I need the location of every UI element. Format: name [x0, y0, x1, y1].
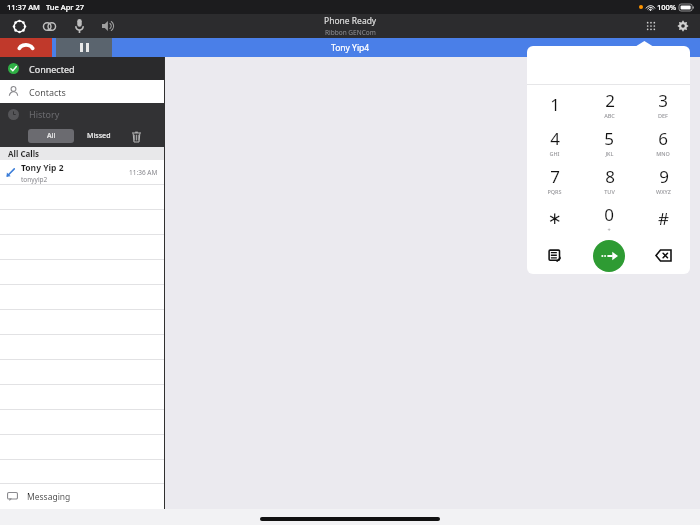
button[interactable]: Call: [582, 237, 636, 274]
staticText: +: [607, 226, 611, 233]
staticText: WXYZ: [656, 188, 671, 195]
staticText: Tue Apr 27: [46, 2, 85, 12]
button[interactable]: Delete history: [128, 128, 144, 144]
staticText: All Calls: [8, 148, 40, 159]
staticText: Tony Yip4: [331, 42, 370, 54]
button[interactable]: Settings: [672, 15, 694, 37]
button[interactable]: [527, 46, 690, 84]
staticText: Messaging: [27, 491, 71, 503]
button[interactable]: Tony Yip 2: [0, 160, 164, 185]
staticText: PQRS: [547, 188, 562, 195]
button[interactable]: ∗: [527, 199, 582, 237]
button[interactable]: 4: [527, 123, 582, 161]
button[interactable]: Speaker volume: [98, 15, 120, 37]
button[interactable]: Connected: [0, 57, 164, 80]
button[interactable]: Dial pad: [640, 15, 662, 37]
button[interactable]: App logo: [8, 15, 30, 37]
staticText: Contacts: [29, 86, 66, 98]
staticText: 11:37 AM: [7, 2, 40, 12]
button[interactable]: 0: [582, 199, 636, 237]
staticText: ABC: [604, 112, 615, 119]
staticText: JKL: [605, 150, 614, 157]
button[interactable]: Missed: [76, 129, 122, 143]
button[interactable]: 9: [636, 161, 690, 199]
button[interactable]: Voicemail: [38, 15, 60, 37]
button[interactable]: 2: [582, 85, 636, 123]
staticText: 4: [550, 127, 560, 150]
staticText: MNO: [656, 150, 670, 157]
button[interactable]: Contacts: [0, 80, 164, 103]
button[interactable]: Backspace: [636, 237, 690, 274]
staticText: 5: [604, 127, 614, 150]
staticText: 2: [605, 89, 615, 112]
staticText: 8: [605, 165, 615, 188]
staticText: 11:36 AM: [129, 168, 158, 177]
staticText: 3: [658, 89, 668, 112]
staticText: 6: [658, 127, 668, 150]
button[interactable]: #: [636, 199, 690, 237]
button[interactable]: Messaging: [0, 484, 164, 509]
staticText: Missed: [87, 131, 111, 141]
staticText: Tony Yip 2: [21, 162, 64, 174]
staticText: 1: [550, 93, 560, 116]
staticText: All: [47, 131, 56, 141]
button[interactable]: 3: [636, 85, 690, 123]
button[interactable]: All: [28, 129, 74, 143]
staticText: Ribbon GENCom: [325, 28, 376, 37]
staticText: 9: [659, 165, 669, 188]
staticText: tonyyip2: [21, 175, 48, 184]
staticText: 7: [550, 165, 560, 188]
staticText: Connected: [29, 63, 75, 75]
staticText: History: [29, 108, 60, 120]
staticText: #: [658, 207, 669, 230]
button[interactable]: Microphone: [68, 15, 90, 37]
button[interactable]: Hold call: [56, 38, 112, 57]
staticText: 0: [604, 203, 614, 226]
button[interactable]: History: [0, 103, 164, 125]
button[interactable]: 5: [582, 123, 636, 161]
button[interactable]: End call: [0, 38, 52, 57]
button[interactable]: Messages: [527, 237, 582, 274]
button[interactable]: 7: [527, 161, 582, 199]
staticText: GHI: [549, 150, 560, 157]
staticText: TUV: [604, 188, 615, 195]
staticText: 100%: [657, 2, 677, 12]
staticText: ∗: [547, 208, 562, 228]
staticText: Phone Ready: [324, 15, 377, 27]
button[interactable]: 8: [582, 161, 636, 199]
button[interactable]: 6: [636, 123, 690, 161]
staticText: DEF: [658, 112, 668, 119]
button[interactable]: 1: [527, 85, 582, 123]
